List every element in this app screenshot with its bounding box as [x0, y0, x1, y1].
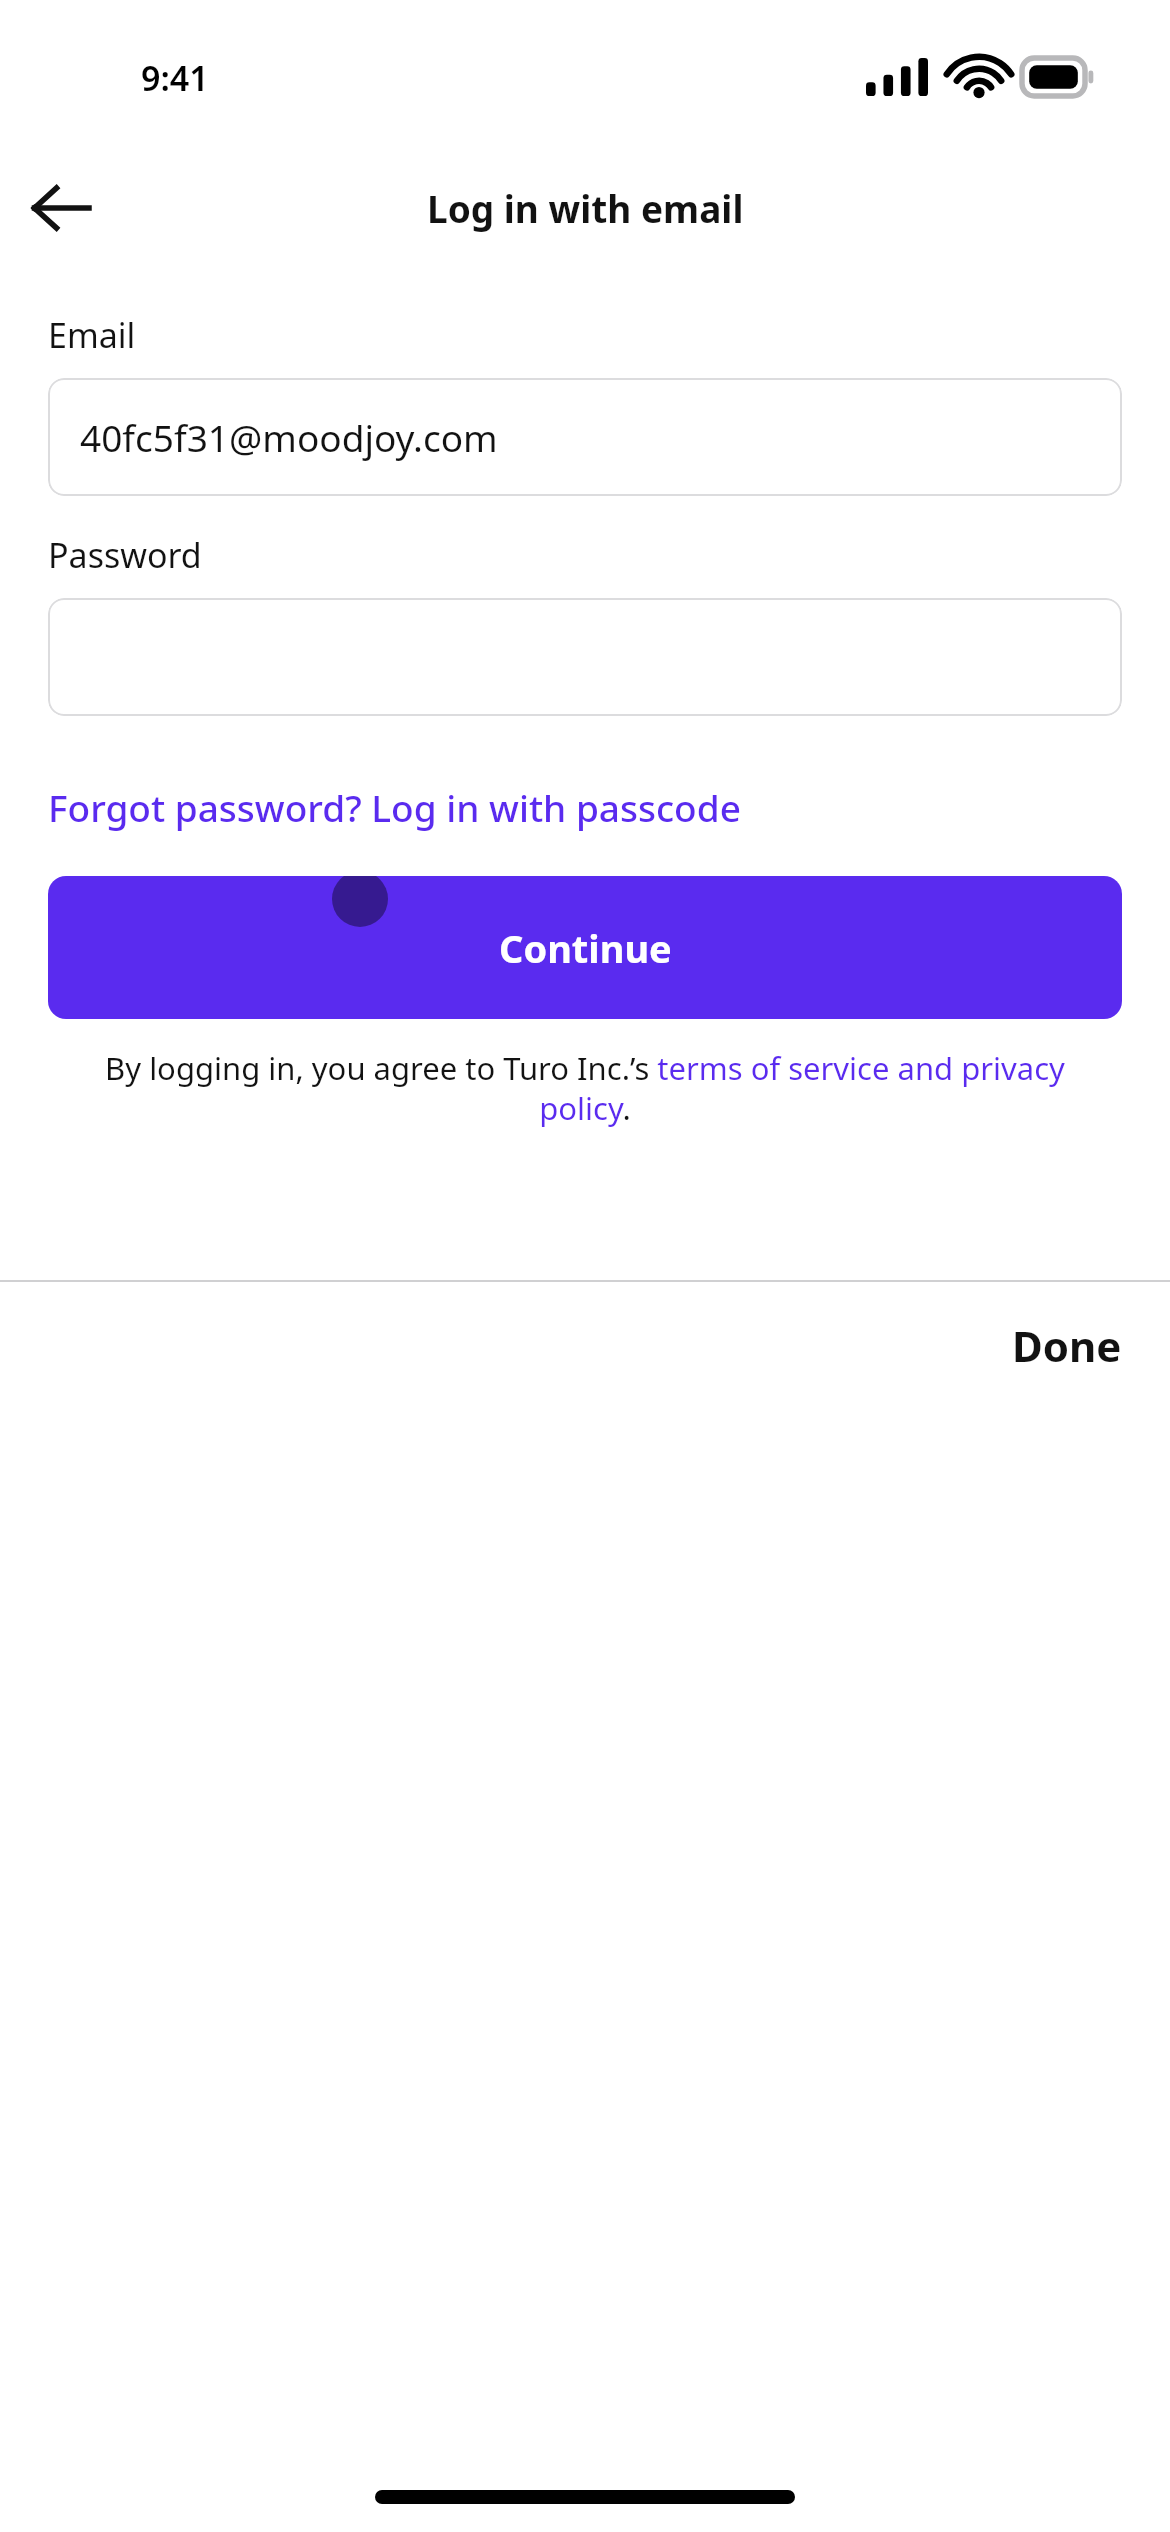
button[interactable]: Back	[16, 164, 104, 252]
staticText: Email	[48, 312, 136, 358]
staticText: Log in with email	[427, 183, 744, 233]
staticText: Continue	[499, 922, 672, 974]
staticText: 9:41	[141, 55, 209, 101]
staticText: Forgot password? Log in with passcode	[48, 782, 741, 832]
button[interactable]: 40fc5f31@moodjoy.com	[48, 378, 1122, 496]
staticText: 40fc5f31@moodjoy.com	[80, 412, 498, 462]
staticText: By logging in, you agree to Turo Inc.’s …	[62, 1047, 1108, 1129]
button[interactable]: Forgot password? Log in with passcode	[48, 782, 741, 832]
staticText: Password	[48, 532, 202, 578]
button[interactable]: Done	[984, 1303, 1150, 1388]
button[interactable]	[48, 598, 1122, 716]
button[interactable]: Continue	[48, 876, 1122, 1019]
staticText: Done	[1012, 1317, 1122, 1374]
